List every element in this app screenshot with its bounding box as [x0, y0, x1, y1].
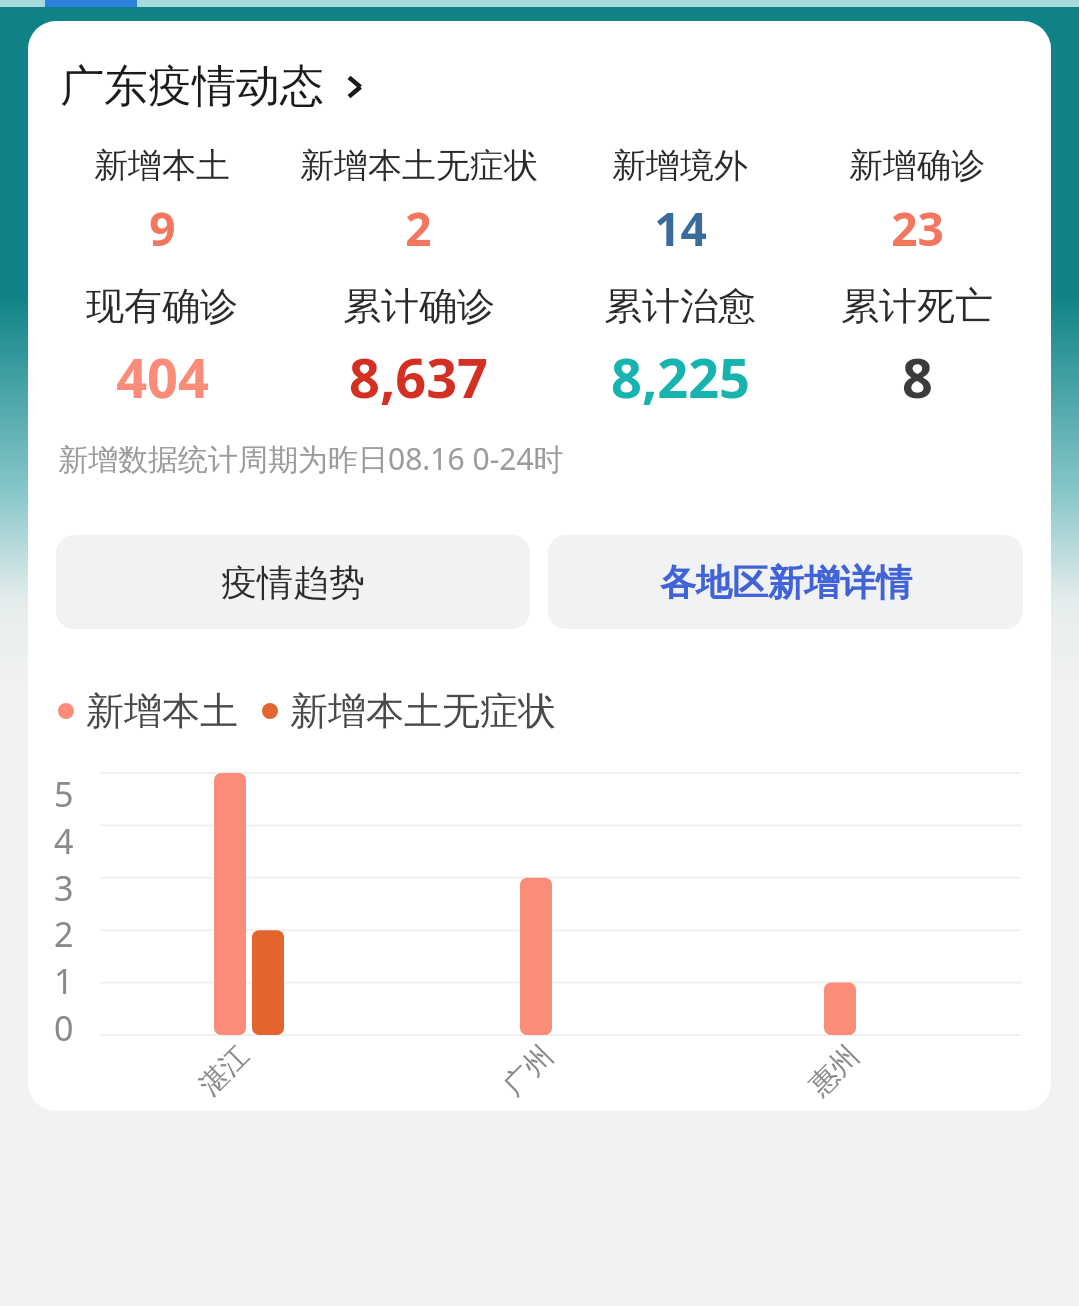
staticText: 现有确诊	[86, 282, 238, 330]
staticText: 新增本土	[94, 144, 230, 187]
staticText: 新增境外	[612, 144, 748, 187]
button[interactable]: 各地区新增详情	[548, 535, 1023, 629]
button[interactable]: 广东疫情动态	[28, 55, 1051, 118]
button[interactable]: 累计死亡	[801, 282, 1033, 414]
staticText: 1	[54, 958, 74, 1004]
staticText: 3	[54, 865, 74, 911]
staticText: 新增本土	[86, 687, 238, 735]
staticText: 5	[54, 771, 74, 817]
staticText: 广东疫情动态	[60, 59, 324, 114]
staticText: 23	[891, 197, 944, 260]
staticText: 新增本土无症状	[300, 144, 538, 187]
staticText: 新增数据统计周期为昨日08.16 0-24时	[58, 438, 564, 479]
button[interactable]: 累计治愈	[559, 282, 801, 414]
staticText: 新增本土无症状	[290, 687, 556, 735]
button[interactable]: 新增本土无症状	[278, 144, 559, 260]
button[interactable]: 现有确诊	[46, 282, 278, 414]
staticText: 8,225	[611, 340, 750, 414]
staticText: 疫情趋势	[221, 560, 365, 605]
staticText: 14	[654, 197, 707, 260]
staticText: 各地区新增详情	[660, 560, 912, 605]
button[interactable]: 新增确诊	[801, 144, 1033, 260]
staticText: 惠州	[802, 1038, 866, 1103]
staticText: 2	[54, 911, 74, 957]
staticText: 湛江	[192, 1038, 256, 1103]
staticText: 2	[405, 197, 432, 260]
button[interactable]: 新增境外	[559, 144, 801, 260]
staticText: 404	[116, 340, 209, 414]
staticText: 4	[54, 818, 74, 864]
staticText: 9	[149, 197, 176, 260]
staticText: 累计治愈	[604, 282, 756, 330]
staticText: 8,637	[349, 340, 488, 414]
other: More details	[340, 72, 370, 102]
button[interactable]: 累计确诊	[278, 282, 559, 414]
staticText: 广州	[496, 1038, 560, 1103]
staticText: 新增确诊	[849, 144, 985, 187]
button[interactable]: 疫情趋势	[56, 535, 530, 629]
staticText: 累计确诊	[343, 282, 495, 330]
staticText: 累计死亡	[841, 282, 993, 330]
staticText: 8	[902, 340, 933, 414]
staticText: 0	[54, 1005, 74, 1051]
button[interactable]: 新增本土	[46, 144, 278, 260]
